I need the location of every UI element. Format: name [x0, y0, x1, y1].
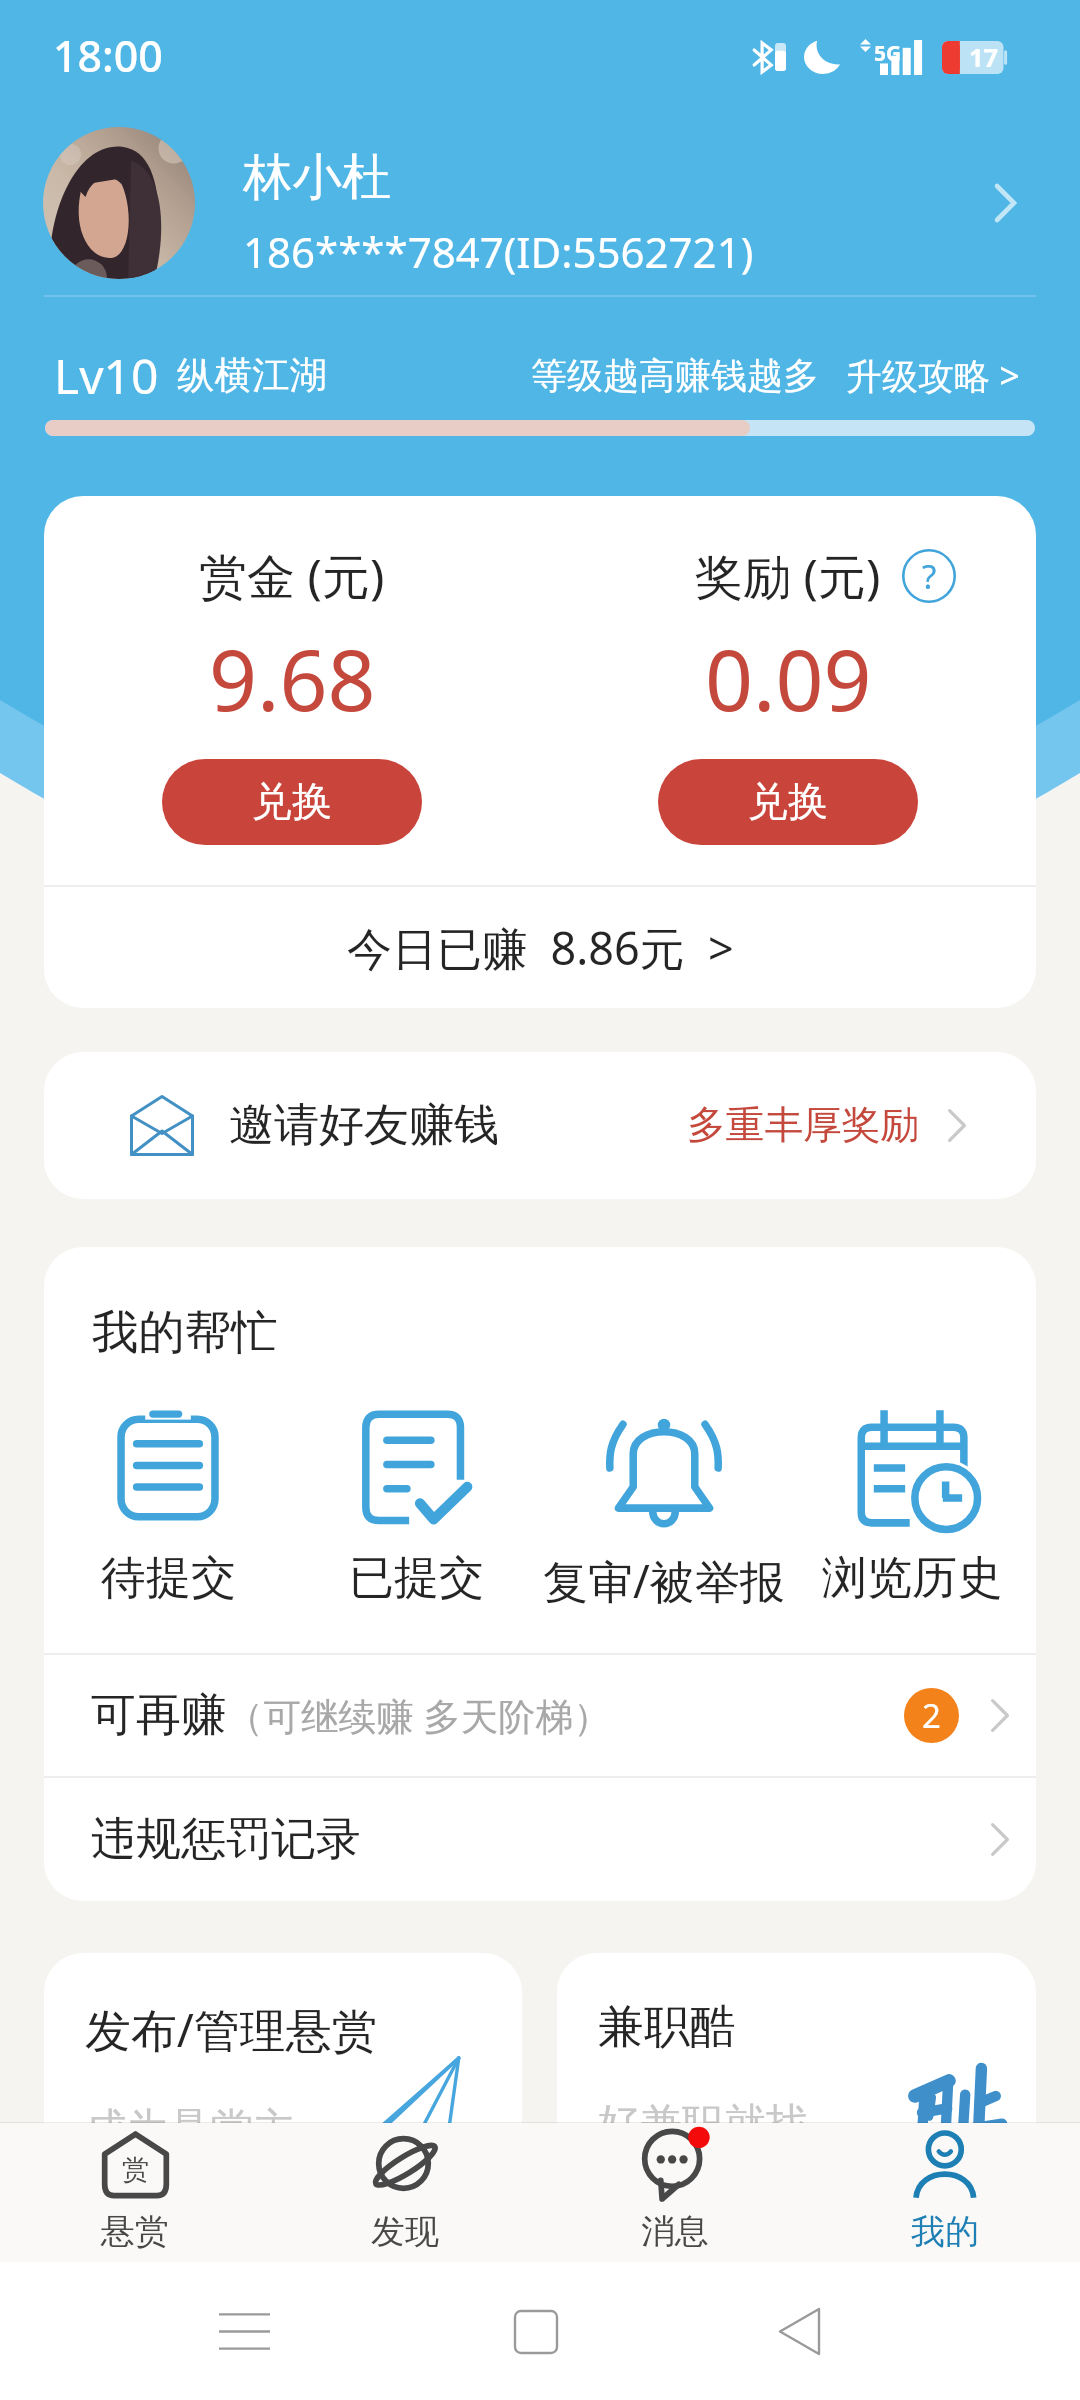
staticText: 林小杜	[243, 146, 392, 208]
staticText: 我的帮忙	[92, 1303, 278, 1362]
button[interactable]: 发现	[270, 2123, 540, 2262]
button[interactable]: 已提交	[292, 1409, 540, 1607]
staticText: 多重丰厚奖励	[687, 1101, 920, 1150]
staticText: 升级攻略 >	[846, 351, 1020, 400]
staticText: 好兼职就找	[598, 2098, 808, 2151]
staticText: 发现	[371, 2210, 439, 2253]
button[interactable]: 复审/被举报	[540, 1409, 788, 1611]
staticText: 发布/管理悬赏	[85, 1998, 378, 2061]
staticText: 复审/被举报	[543, 1550, 785, 1611]
staticText: 已提交	[349, 1550, 484, 1607]
staticText: 2	[922, 1693, 941, 1738]
staticText: 赏	[122, 2153, 149, 2187]
button[interactable]: Back	[747, 2279, 852, 2384]
button[interactable]: 今日已赚 8.86元 >	[44, 887, 1036, 1008]
staticText: 浏览历史	[822, 1550, 1002, 1607]
staticText: 9.68	[209, 621, 376, 735]
staticText: 纵横江湖	[177, 352, 327, 399]
button[interactable]: 待提交	[44, 1409, 292, 1607]
staticText: 待提交	[101, 1550, 236, 1607]
staticText: 悬赏	[101, 2210, 169, 2253]
staticText: 18:00	[53, 26, 163, 84]
staticText: 邀请好友赚钱	[229, 1097, 499, 1154]
button[interactable]: 浏览历史	[788, 1409, 1036, 1607]
button[interactable]: 兼职酷	[557, 1953, 1036, 2241]
staticText: 186****7847(ID:5562721)	[243, 223, 754, 280]
staticText: 消息	[641, 2210, 709, 2253]
staticText: Lv10	[54, 343, 159, 408]
staticText: （可继续赚 多天阶梯）	[226, 1690, 611, 1741]
button[interactable]: Recent apps	[192, 2279, 297, 2384]
button[interactable]: 我的	[810, 2123, 1080, 2262]
button[interactable]: 邀请好友赚钱	[44, 1052, 1036, 1199]
button[interactable]: 违规惩罚记录	[44, 1778, 1036, 1901]
staticText: 成为悬赏主	[85, 2103, 295, 2156]
staticText: 兑换	[252, 777, 332, 827]
button[interactable]: 赏	[0, 2123, 270, 2262]
staticText: 违规惩罚记录	[91, 1811, 361, 1868]
staticText: 0.09	[705, 621, 872, 735]
staticText: ?	[922, 554, 937, 599]
staticText: 等级越高赚钱越多	[531, 353, 819, 398]
staticText: 17	[969, 40, 999, 75]
button[interactable]: 兑换	[162, 759, 422, 845]
staticText: 可再赚	[91, 1687, 226, 1744]
staticText: 赏金 (元)	[199, 543, 385, 609]
button[interactable]: 可再赚	[44, 1655, 1036, 1776]
button[interactable]: Help	[902, 549, 956, 603]
button[interactable]: 兑换	[658, 759, 918, 845]
staticText: 我的	[911, 2210, 979, 2253]
staticText: 奖励 (元)	[695, 543, 881, 609]
staticText: 兼职酷	[598, 1998, 736, 2056]
staticText: 兑换	[748, 777, 828, 827]
staticText: 今日已赚 8.86元 >	[347, 917, 734, 978]
staticText: 5G	[874, 39, 902, 68]
button[interactable]: Home	[483, 2279, 588, 2384]
button[interactable]: 发布/管理悬赏	[44, 1953, 522, 2241]
button[interactable]: 消息	[540, 2123, 810, 2262]
button[interactable]: 林小杜	[0, 110, 1080, 295]
